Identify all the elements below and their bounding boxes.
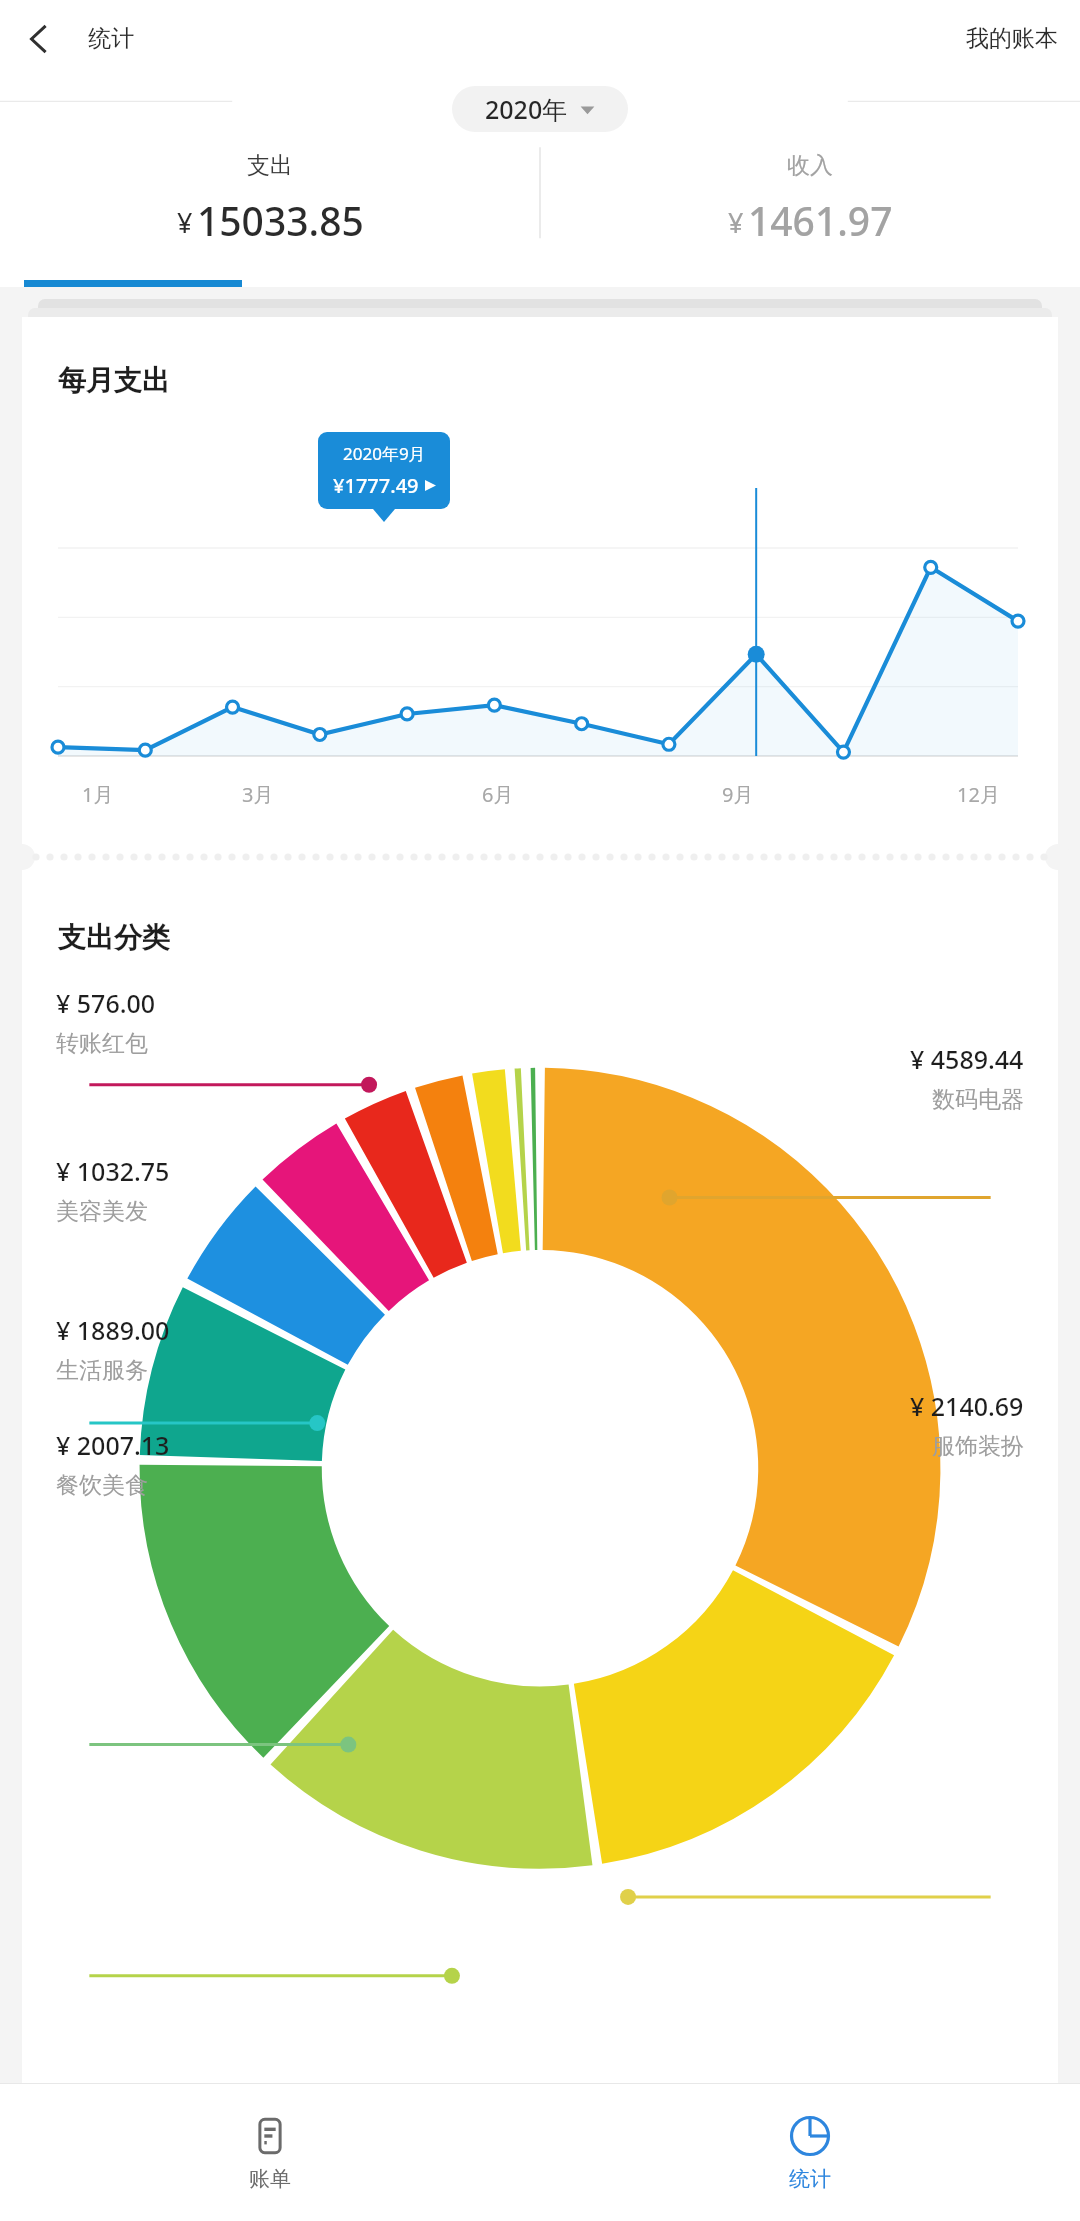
button[interactable]: 收入 [540, 135, 1080, 287]
staticText: 支出 [247, 151, 293, 180]
button[interactable]: 统计 [540, 2084, 1080, 2221]
button[interactable]: ¥ 576.00 [56, 986, 156, 1058]
button[interactable]: 2020年 [452, 86, 628, 132]
staticText: 2020年9月 [343, 442, 426, 465]
staticText: ¥ 4589.44 [910, 1042, 1024, 1076]
button[interactable]: ¥ 2007.13 [56, 1428, 170, 1500]
staticText: ¥1777.49 [333, 472, 419, 499]
staticText: ¥ [177, 204, 193, 241]
button[interactable]: ¥ 2140.69 [910, 1389, 1024, 1461]
staticText: ¥ 2007.13 [56, 1428, 170, 1462]
button[interactable]: 2020年9月 [318, 432, 450, 509]
staticText: 1月 [82, 781, 114, 808]
button[interactable]: 我的账本 [966, 24, 1058, 53]
staticText: 服饰装扮 [932, 1432, 1024, 1461]
staticText: 3月 [242, 781, 274, 808]
staticText: 统计 [789, 2166, 831, 2192]
staticText: 1461.97 [748, 194, 893, 247]
button[interactable]: ¥ 4589.44 [910, 1042, 1024, 1114]
staticText: 支出分类 [58, 920, 170, 955]
staticText: 每月支出 [58, 363, 170, 398]
button[interactable]: ¥ 1032.75 [56, 1154, 170, 1226]
staticText: 账单 [249, 2166, 291, 2192]
staticText: 数码电器 [932, 1085, 1024, 1114]
staticText: 餐饮美食 [56, 1471, 148, 1500]
staticText: ¥ 1889.00 [56, 1313, 170, 1347]
staticText: 生活服务 [56, 1356, 148, 1385]
button[interactable]: Back [8, 8, 70, 70]
staticText: ¥ 1032.75 [56, 1154, 170, 1188]
staticText: 2020年 [485, 92, 568, 126]
staticText: 统计 [88, 24, 134, 53]
staticText: ¥ 576.00 [56, 986, 156, 1020]
staticText: 美容美发 [56, 1197, 148, 1226]
staticText: 9月 [722, 781, 754, 808]
staticText: ¥ 2140.69 [910, 1389, 1024, 1423]
staticText: 12月 [957, 781, 1000, 808]
staticText: 转账红包 [56, 1029, 148, 1058]
button[interactable]: 支出 [0, 135, 540, 287]
button[interactable]: 账单 [0, 2084, 540, 2221]
staticText: 收入 [787, 151, 833, 180]
staticText: 15033.85 [197, 194, 364, 247]
staticText: ¥ [728, 204, 744, 241]
button[interactable]: ¥ 1889.00 [56, 1313, 170, 1385]
staticText: 6月 [482, 781, 514, 808]
